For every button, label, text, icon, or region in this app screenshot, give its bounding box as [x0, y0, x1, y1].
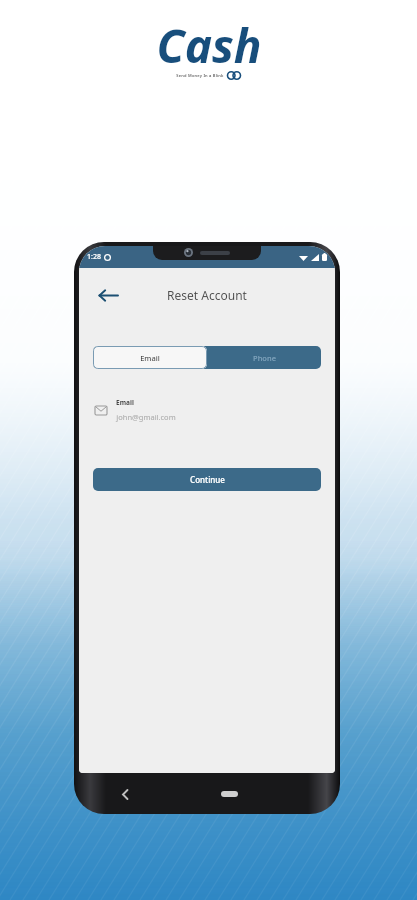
button[interactable]: Email [93, 346, 207, 369]
staticText: Phone [253, 353, 276, 363]
button[interactable]: Continue [93, 468, 321, 491]
staticText: Continue [190, 474, 225, 485]
button[interactable]: Back [93, 280, 123, 310]
button[interactable]: Home [221, 791, 238, 797]
staticText: Cash [156, 14, 262, 77]
button[interactable]: Back [115, 784, 135, 804]
staticText: 1:28 [87, 252, 101, 262]
staticText: Reset Account [167, 287, 247, 303]
staticText: Email [116, 398, 134, 407]
staticText: Email [140, 353, 160, 363]
staticText: john@gmail.com [116, 412, 176, 422]
staticText: Send Money In a Blink [176, 73, 224, 78]
button[interactable]: Phone [207, 346, 321, 369]
